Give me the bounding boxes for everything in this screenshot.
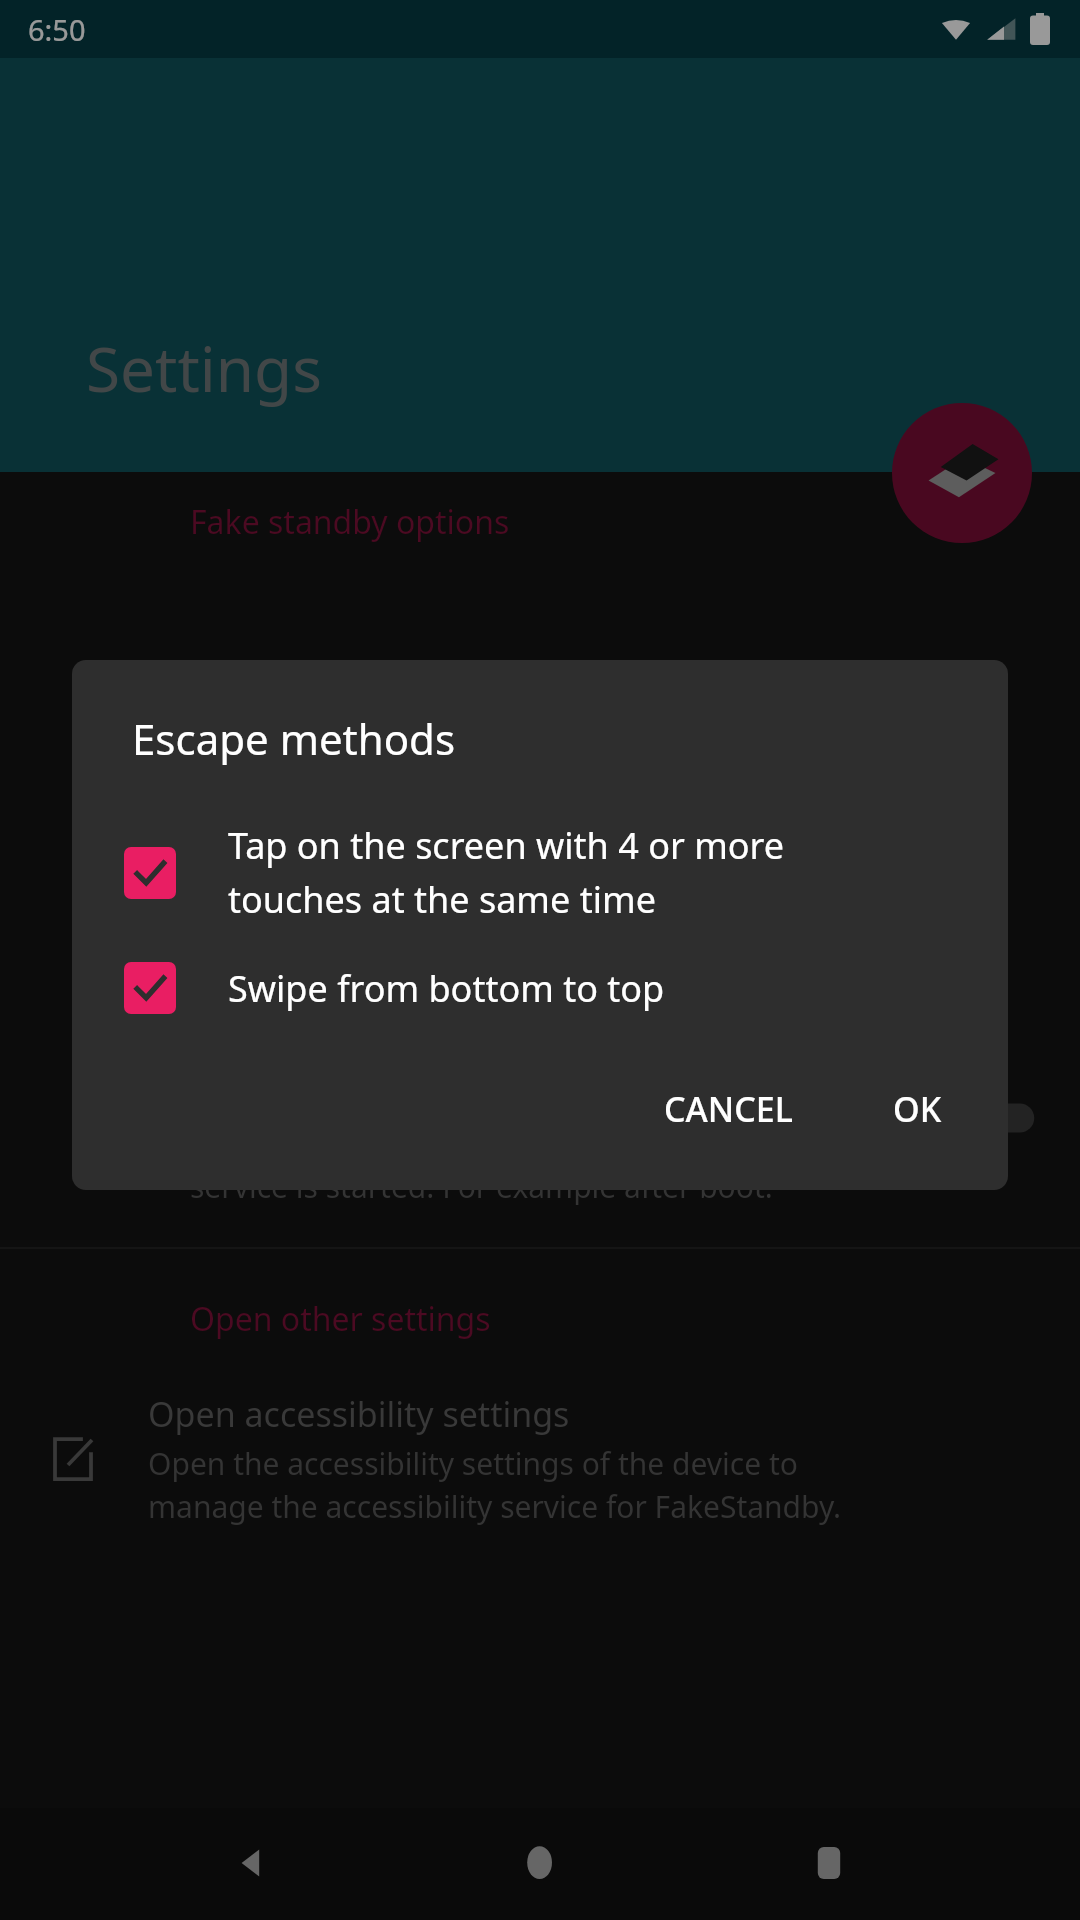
staticText: Swipe from bottom to top xyxy=(228,964,665,1013)
staticText: Settings xyxy=(86,326,322,410)
button[interactable]: Start fake standby xyxy=(892,403,1032,543)
staticText: 6:50 xyxy=(28,10,86,49)
button[interactable]: Start standby on boot xyxy=(0,1022,1080,1225)
staticText: CANCEL xyxy=(664,1086,793,1132)
staticText: When enabled, the fake standby will be s… xyxy=(190,1080,773,1207)
button[interactable]: Back xyxy=(215,1826,289,1900)
button[interactable]: Swipe from bottom to top xyxy=(72,958,1008,1018)
button[interactable]: Open accessibility settings xyxy=(0,1391,1080,1527)
button[interactable]: OK xyxy=(869,1070,966,1148)
button[interactable]: Start standby on boot toggle xyxy=(944,1090,1040,1146)
button[interactable]: Recent apps xyxy=(792,1826,866,1900)
staticText: OK xyxy=(893,1086,942,1132)
staticText: Fake standby options xyxy=(190,500,510,544)
staticText: Tap on the screen with 4 or more touches… xyxy=(228,821,785,924)
button[interactable]: CANCEL xyxy=(640,1070,817,1148)
staticText: Open the accessibility settings of the d… xyxy=(148,1443,842,1527)
button[interactable]: Tap on the screen with 4 or more touches… xyxy=(72,817,1008,928)
button[interactable]: Home xyxy=(503,1826,577,1900)
staticText: Escape methods xyxy=(132,710,456,767)
staticText: Open other settings xyxy=(190,1297,491,1341)
staticText: Open accessibility settings xyxy=(148,1391,570,1437)
